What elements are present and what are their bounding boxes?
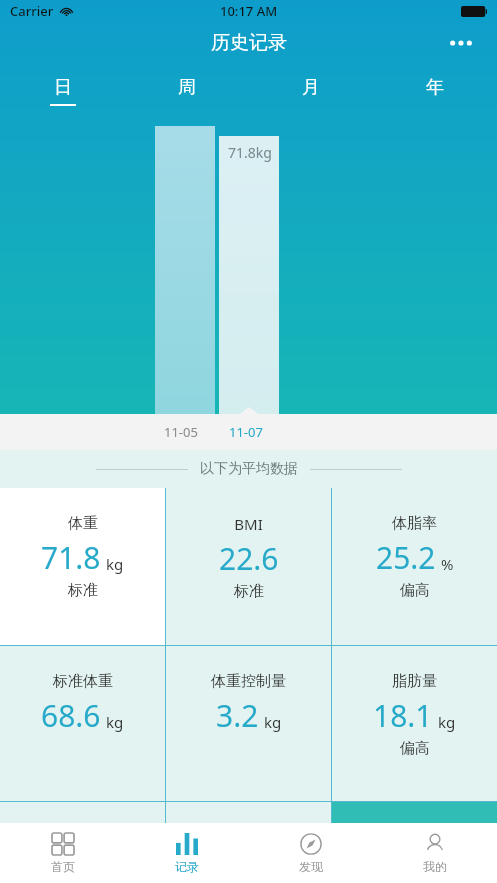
staticText: 71.8kg: [228, 143, 272, 162]
button[interactable]: 记录: [125, 823, 249, 883]
staticText: 月: [302, 76, 320, 99]
button[interactable]: 首页: [0, 823, 125, 883]
staticText: kg: [106, 554, 124, 574]
button[interactable]: 月: [249, 64, 373, 117]
staticText: 体脂率: [392, 514, 437, 533]
staticText: Carrier: [10, 2, 54, 20]
staticText: 日: [54, 76, 72, 99]
button[interactable]: 体重控制量: [166, 646, 331, 801]
staticText: 脂肪量: [392, 672, 437, 691]
staticText: 发现: [299, 859, 323, 874]
staticText: 11-05: [164, 423, 198, 441]
staticText: 偏高: [400, 739, 430, 758]
staticText: 首页: [51, 859, 75, 874]
button[interactable]: 脂肪量: [332, 646, 497, 801]
button[interactable]: 周: [125, 64, 249, 117]
staticText: 68.6: [41, 695, 101, 736]
staticText: 周: [178, 76, 196, 99]
staticText: 71.8: [41, 537, 101, 578]
staticText: BMI: [234, 514, 263, 534]
button[interactable]: 年: [373, 64, 497, 117]
staticText: 我的: [423, 859, 447, 874]
button[interactable]: 我的: [373, 823, 497, 883]
button[interactable]: More options: [439, 23, 483, 63]
staticText: 25.2: [376, 537, 436, 578]
button[interactable]: 体重: [0, 488, 165, 645]
staticText: kg: [264, 712, 282, 732]
staticText: 11-07: [229, 423, 263, 441]
staticText: 3.2: [216, 695, 259, 736]
staticText: 标准: [68, 581, 98, 600]
staticText: 体重: [68, 514, 98, 533]
staticText: 历史记录: [211, 31, 287, 55]
staticText: 标准: [234, 582, 264, 601]
button[interactable]: 体脂率: [332, 488, 497, 645]
staticText: %: [441, 554, 454, 574]
staticText: 年: [426, 76, 444, 99]
staticText: 体重控制量: [211, 672, 286, 691]
staticText: kg: [438, 712, 456, 732]
staticText: 记录: [175, 859, 199, 874]
staticText: 以下为平均数据: [200, 460, 298, 478]
staticText: 偏高: [400, 581, 430, 600]
staticText: kg: [106, 712, 124, 732]
button[interactable]: 发现: [249, 823, 373, 883]
staticText: 10:17 AM: [220, 2, 278, 20]
staticText: 18.1: [373, 695, 433, 736]
staticText: 标准体重: [53, 672, 113, 691]
button[interactable]: BMI: [166, 488, 331, 645]
button[interactable]: 标准体重: [0, 646, 165, 801]
button[interactable]: 日: [0, 64, 125, 117]
staticText: 22.6: [219, 538, 279, 579]
